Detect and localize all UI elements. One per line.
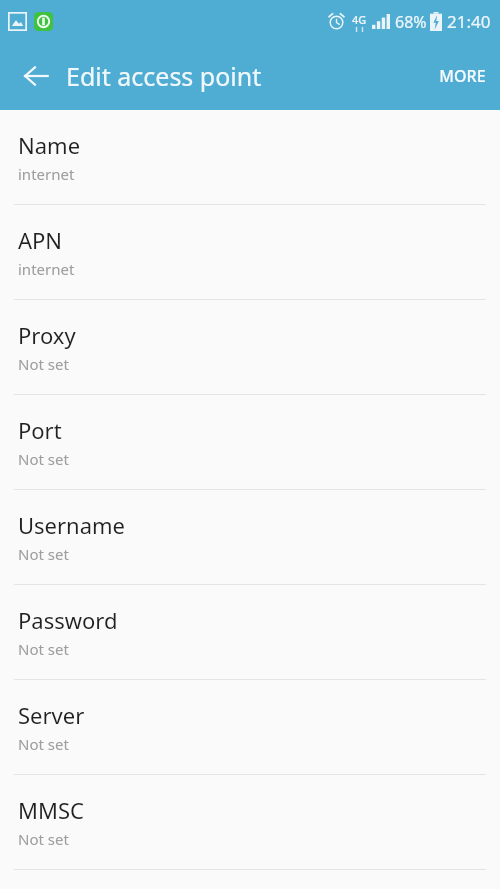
staticText: 68% <box>395 11 427 33</box>
staticText: Proxy <box>18 320 76 350</box>
staticText: Password <box>18 605 118 635</box>
button[interactable]: MORE <box>425 42 500 110</box>
button[interactable]: Name <box>0 110 500 204</box>
button[interactable]: Username <box>0 490 500 584</box>
staticText: Username <box>18 510 126 540</box>
staticText: Not set <box>18 544 69 564</box>
staticText: Not set <box>18 734 69 754</box>
staticText: Name <box>18 130 81 160</box>
staticText: MORE <box>439 65 486 87</box>
staticText: Edit access point <box>66 59 262 93</box>
staticText: Server <box>18 700 85 730</box>
button[interactable]: APN <box>0 205 500 299</box>
staticText: Not set <box>18 829 69 849</box>
button[interactable]: Server <box>0 680 500 774</box>
button[interactable]: Navigate up <box>12 52 60 100</box>
staticText: Not set <box>18 639 69 659</box>
staticText: Port <box>18 415 62 445</box>
button[interactable]: Password <box>0 585 500 679</box>
button[interactable]: Port <box>0 395 500 489</box>
button[interactable]: Proxy <box>0 300 500 394</box>
staticText: internet <box>18 164 75 184</box>
staticText: 4G <box>352 12 367 27</box>
staticText: MMSC <box>18 795 84 825</box>
button[interactable]: MMSC <box>0 775 500 869</box>
staticText: 21:40 <box>447 10 491 33</box>
staticText: Not set <box>18 449 69 469</box>
staticText: internet <box>18 259 75 279</box>
staticText: APN <box>18 225 63 255</box>
staticText: Not set <box>18 354 69 374</box>
